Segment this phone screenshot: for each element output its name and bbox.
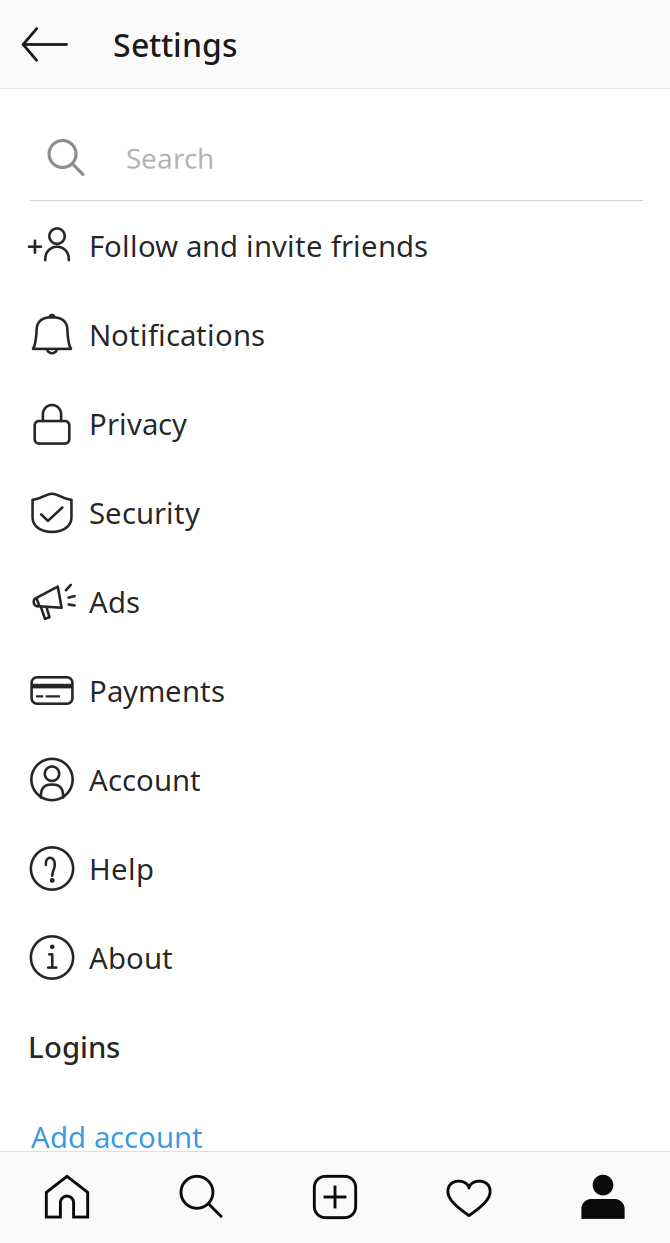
staticText: Follow and invite friends	[89, 226, 428, 265]
button[interactable]: Notifications	[0, 290, 670, 379]
button[interactable]: Ads	[0, 557, 670, 646]
button[interactable]: Search	[134, 1151, 268, 1243]
button[interactable]: Search	[0, 89, 670, 201]
button[interactable]: Follow and invite friends	[0, 201, 670, 290]
staticText: Search	[126, 139, 214, 177]
button[interactable]: Home	[0, 1151, 134, 1243]
button[interactable]: Activity	[402, 1151, 536, 1243]
staticText: Logins	[28, 1027, 120, 1066]
staticText: Settings	[113, 23, 238, 66]
staticText: Security	[89, 493, 200, 532]
button[interactable]: Payments	[0, 646, 670, 735]
button[interactable]: New post	[268, 1151, 402, 1243]
button[interactable]: Account	[0, 735, 670, 824]
button[interactable]: Add account	[0, 1091, 670, 1182]
staticText: Help	[89, 849, 154, 888]
staticText: About	[89, 938, 173, 977]
staticText: Notifications	[89, 315, 265, 354]
button[interactable]: Help	[0, 824, 670, 913]
button[interactable]: About	[0, 913, 670, 1002]
staticText: Ads	[89, 582, 140, 621]
button[interactable]: Security	[0, 468, 670, 557]
staticText: Add account	[31, 1117, 203, 1156]
staticText: Account	[89, 760, 201, 799]
button[interactable]: Back	[0, 0, 89, 89]
staticText: Privacy	[89, 404, 187, 443]
button[interactable]: Privacy	[0, 379, 670, 468]
staticText: Payments	[89, 671, 225, 710]
button[interactable]: Profile	[536, 1151, 670, 1243]
